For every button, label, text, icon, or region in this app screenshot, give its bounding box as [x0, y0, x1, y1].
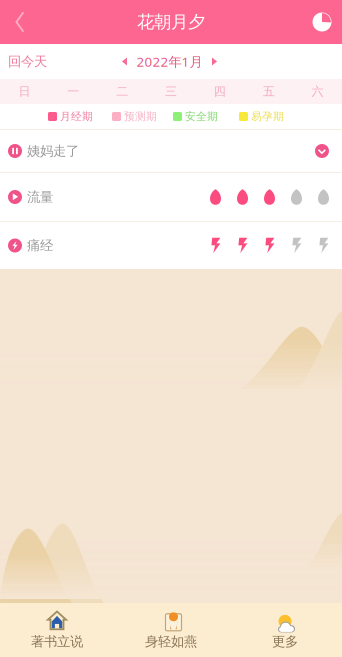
staticText: 日 — [18, 84, 30, 99]
staticText: 二 — [116, 84, 128, 99]
button[interactable]: 痛经 — [0, 221, 342, 269]
button[interactable]: Statistics — [302, 0, 342, 44]
button[interactable]: 回今天 — [0, 44, 47, 79]
staticText: 安全期 — [185, 110, 218, 123]
staticText: 身轻如燕 — [145, 633, 197, 650]
button[interactable]: 姨妈走了 — [0, 129, 342, 172]
staticText: 预测期 — [124, 110, 157, 123]
staticText: 花朝月夕 — [137, 11, 205, 33]
staticText: 流量 — [27, 189, 53, 205]
staticText: 四 — [214, 84, 226, 99]
staticText: 痛经 — [27, 237, 53, 254]
staticText: 三 — [165, 84, 177, 99]
button[interactable]: 流量 — [0, 172, 342, 221]
staticText: 姨妈走了 — [27, 143, 79, 159]
button[interactable]: 著书立说 — [0, 603, 114, 657]
button[interactable]: 身轻如燕 — [114, 603, 228, 657]
staticText: 五 — [263, 84, 275, 99]
button[interactable]: Previous month — [118, 54, 130, 68]
staticText: 著书立说 — [31, 633, 83, 650]
staticText: 一 — [67, 84, 79, 99]
staticText: 2022年1月 — [136, 53, 202, 70]
button[interactable]: Next month — [208, 54, 220, 68]
button[interactable]: Back — [0, 0, 40, 44]
staticText: 回今天 — [8, 53, 47, 70]
staticText: 更多 — [272, 633, 298, 650]
staticText: 易孕期 — [251, 110, 284, 123]
staticText: 六 — [312, 84, 324, 99]
button[interactable]: 更多 — [228, 603, 342, 657]
staticText: 月经期 — [60, 110, 93, 123]
